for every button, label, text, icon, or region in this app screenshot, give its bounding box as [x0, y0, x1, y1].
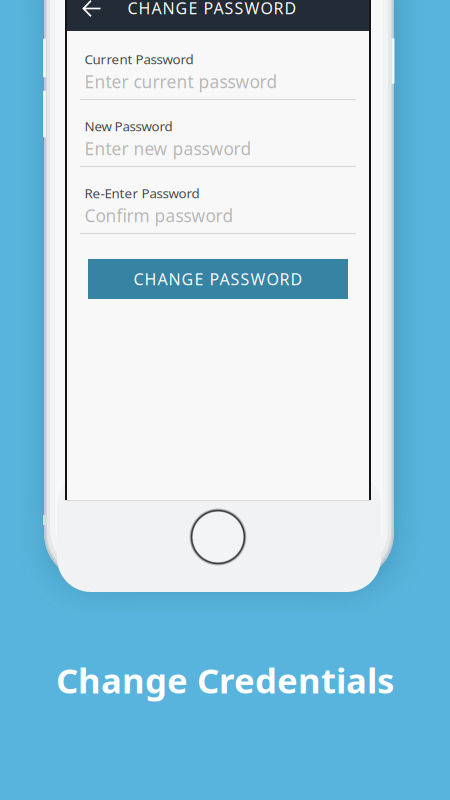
button[interactable]: Current Password — [67, 33, 369, 100]
staticText: Change Credentials — [56, 657, 394, 703]
staticText: Confirm password — [84, 204, 233, 227]
button[interactable]: CHANGE PASSWORD — [88, 259, 348, 299]
staticText: Current Password — [84, 50, 193, 68]
staticText: Re-Enter Password — [84, 184, 199, 202]
staticText: CHANGE PASSWORD — [127, 0, 296, 19]
button[interactable]: Back — [70, 0, 114, 24]
staticText: Enter new password — [84, 137, 251, 160]
staticText: Enter current password — [84, 70, 277, 93]
staticText: CHANGE PASSWORD — [133, 268, 302, 290]
staticText: New Password — [84, 117, 172, 135]
button[interactable]: New Password — [67, 100, 369, 167]
button[interactable]: Home — [188, 507, 248, 567]
button[interactable]: Re-Enter Password — [67, 167, 369, 234]
